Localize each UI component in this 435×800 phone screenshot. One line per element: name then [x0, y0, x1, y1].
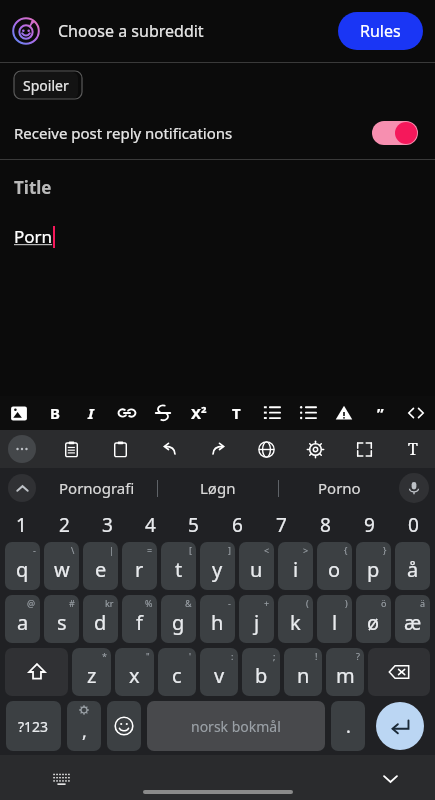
button[interactable]: Link — [114, 400, 140, 426]
button[interactable]: n — [284, 648, 322, 696]
staticText: ' — [189, 650, 192, 662]
button[interactable]: 1 — [0, 508, 43, 542]
button[interactable]: Settings — [301, 435, 329, 463]
button[interactable]: More options — [8, 435, 36, 463]
button[interactable]: Spoiler — [331, 400, 357, 426]
staticText: ø — [367, 609, 380, 636]
button[interactable]: j — [239, 595, 274, 643]
button[interactable]: v — [200, 648, 238, 696]
button[interactable]: d — [83, 595, 118, 643]
button[interactable]: Receive post reply notifications — [0, 107, 435, 159]
button[interactable]: 2 — [43, 508, 86, 542]
button[interactable]: å — [395, 542, 430, 590]
staticText: y — [212, 556, 223, 583]
button[interactable]: f — [122, 595, 157, 643]
staticText: Porno — [318, 478, 361, 498]
button[interactable]: 8 — [303, 508, 347, 542]
button[interactable]: i — [278, 542, 313, 590]
button[interactable]: b — [242, 648, 280, 696]
button[interactable]: Quote — [367, 400, 393, 426]
button[interactable]: 5 — [172, 508, 215, 542]
staticText: * — [102, 650, 107, 662]
button[interactable]: Comma, settings — [67, 701, 101, 751]
button[interactable]: t — [161, 542, 196, 590]
button[interactable]: Expand suggestions — [8, 474, 36, 502]
button[interactable]: Reddit avatar — [12, 17, 40, 45]
button[interactable]: Undo — [155, 435, 183, 463]
button[interactable]: Redo — [204, 435, 232, 463]
button[interactable]: l — [317, 595, 352, 643]
button[interactable]: æ — [395, 595, 430, 643]
button[interactable]: Code — [403, 400, 429, 426]
button[interactable]: w — [44, 542, 79, 590]
button[interactable]: c — [158, 648, 196, 696]
button[interactable]: 0 — [391, 508, 435, 542]
button[interactable]: Bold — [42, 400, 68, 426]
button[interactable]: r — [122, 542, 157, 590]
button[interactable]: Emoji — [107, 701, 141, 751]
button[interactable]: 9 — [347, 508, 391, 542]
button[interactable]: 7 — [259, 508, 303, 542]
button[interactable]: z — [72, 648, 111, 696]
staticText: Løgn — [200, 478, 236, 498]
button[interactable]: 4 — [129, 508, 172, 542]
button[interactable]: p — [356, 542, 391, 590]
button[interactable]: Switch keyboard — [48, 765, 74, 791]
button[interactable]: Bulleted list — [295, 400, 321, 426]
staticText: ] — [228, 544, 231, 556]
button[interactable]: Text editing — [399, 435, 427, 463]
staticText: . — [346, 714, 351, 739]
button[interactable]: Italic — [78, 400, 104, 426]
button[interactable]: Porno — [279, 468, 399, 508]
staticText: l — [332, 609, 338, 636]
button[interactable]: Voice input — [399, 473, 429, 503]
staticText: v — [214, 662, 225, 689]
staticText: 1 — [16, 512, 27, 538]
button[interactable]: Numbered list — [259, 400, 285, 426]
staticText: : — [231, 650, 234, 662]
button[interactable]: 6 — [215, 508, 259, 542]
button[interactable]: Løgn — [158, 468, 278, 508]
button[interactable]: norsk bokmål — [147, 701, 325, 751]
button[interactable]: g — [161, 595, 196, 643]
button[interactable]: q — [5, 542, 40, 590]
button[interactable]: e — [83, 542, 118, 590]
button[interactable]: Period — [331, 701, 365, 751]
button[interactable]: Choose a subreddit — [58, 20, 338, 42]
button[interactable]: ø — [356, 595, 391, 643]
staticText: , — [82, 719, 87, 744]
button[interactable]: a — [5, 595, 40, 643]
button[interactable]: o — [317, 542, 352, 590]
button[interactable]: Rules — [338, 12, 423, 50]
button[interactable]: Shift — [5, 648, 68, 696]
button[interactable]: Backspace — [368, 648, 430, 696]
button[interactable]: x — [115, 648, 154, 696]
button[interactable]: 3 — [86, 508, 129, 542]
staticText: T — [408, 438, 418, 460]
button[interactable]: h — [200, 595, 235, 643]
button[interactable]: Pornografi — [36, 468, 157, 508]
staticText: + — [264, 597, 270, 609]
staticText: " — [146, 650, 150, 662]
button[interactable]: Insert image — [6, 400, 32, 426]
button[interactable]: Hide keyboard — [375, 763, 405, 793]
staticText: ! — [315, 650, 318, 662]
button[interactable]: Resize keyboard — [350, 435, 378, 463]
staticText: ) — [345, 597, 348, 609]
button[interactable]: Heading — [223, 400, 249, 426]
button[interactable]: y — [200, 542, 235, 590]
button[interactable]: s — [44, 595, 79, 643]
staticText: n — [297, 662, 310, 689]
button[interactable]: Clipboard history — [57, 435, 85, 463]
button[interactable]: k — [278, 595, 313, 643]
button[interactable]: Clipboard — [106, 435, 134, 463]
button[interactable]: u — [239, 542, 274, 590]
button[interactable]: Spoiler — [14, 72, 78, 99]
button[interactable]: ?123 — [6, 701, 61, 751]
button[interactable]: Translate — [252, 435, 280, 463]
button[interactable]: Enter — [376, 702, 424, 750]
staticText: Title — [14, 176, 52, 199]
button[interactable]: m — [326, 648, 364, 696]
button[interactable]: Superscript — [186, 400, 212, 426]
button[interactable]: Strikethrough — [150, 400, 176, 426]
